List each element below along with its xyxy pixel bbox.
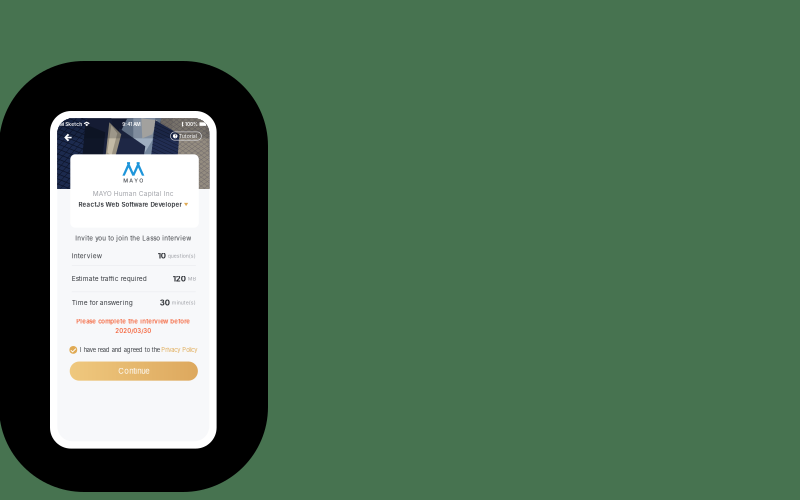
staticText: Sketch xyxy=(65,121,82,127)
button[interactable]: Back xyxy=(62,131,74,144)
staticText: Invite you to join the Lasso interview xyxy=(75,234,191,242)
staticText: MB xyxy=(186,276,196,282)
staticText: ReactJs Web Software Developer xyxy=(78,201,181,208)
staticText: 30 xyxy=(160,298,170,307)
staticText: Interview xyxy=(72,252,102,260)
staticText: 100% xyxy=(185,121,198,127)
button[interactable]: ? xyxy=(170,132,201,140)
staticText: question(s) xyxy=(166,253,196,259)
staticText: 10 xyxy=(158,251,166,260)
button[interactable]: Continue xyxy=(70,361,198,381)
staticText: Estimate traffic required xyxy=(72,275,147,283)
staticText: I have read and agreed to the xyxy=(80,346,160,353)
staticText: Privacy Policy xyxy=(161,346,197,353)
staticText: 120 xyxy=(173,274,186,283)
staticText: M A Y O xyxy=(123,177,143,184)
staticText: Tutorial xyxy=(179,133,197,139)
staticText: Please complete the interview before xyxy=(76,318,190,325)
staticText: ? xyxy=(174,133,176,139)
staticText: Continue xyxy=(118,366,149,376)
staticText: Time for answering xyxy=(72,299,133,306)
staticText: minute(s) xyxy=(170,299,196,306)
staticText: MAYO Human Capital Inc xyxy=(93,190,174,197)
staticText: 2020/03/30 xyxy=(115,327,151,335)
staticText: 9:41 AM xyxy=(122,121,140,127)
button[interactable]: I have read and agreed to the xyxy=(69,346,197,354)
